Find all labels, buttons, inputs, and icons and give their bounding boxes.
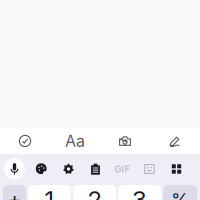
button[interactable]: 2 bbox=[73, 185, 116, 200]
button[interactable]: Settings bbox=[55, 154, 82, 184]
button[interactable]: More bbox=[163, 154, 190, 184]
button[interactable]: Stickers bbox=[136, 154, 163, 184]
staticText: + bbox=[8, 187, 21, 200]
button[interactable]: Markup bbox=[150, 128, 200, 154]
button[interactable]: Checklist bbox=[0, 128, 50, 154]
staticText: 2 bbox=[87, 185, 101, 200]
button[interactable]: 1 bbox=[28, 185, 71, 200]
staticText: 1 bbox=[44, 185, 54, 200]
button[interactable]: Themes bbox=[28, 154, 55, 184]
button[interactable]: Clipboard bbox=[82, 154, 109, 184]
staticText: % bbox=[171, 188, 189, 200]
staticText: Aa bbox=[65, 131, 85, 151]
button[interactable]: + bbox=[3, 185, 26, 200]
button[interactable]: Voice input bbox=[1, 154, 28, 184]
staticText: GIF bbox=[114, 163, 130, 175]
button[interactable]: 3 bbox=[118, 185, 161, 200]
button[interactable]: % bbox=[163, 185, 197, 200]
button[interactable]: Aa bbox=[50, 128, 100, 154]
staticText: 3 bbox=[132, 185, 147, 200]
button[interactable]: GIF bbox=[109, 154, 136, 184]
button[interactable]: Camera bbox=[100, 128, 150, 154]
